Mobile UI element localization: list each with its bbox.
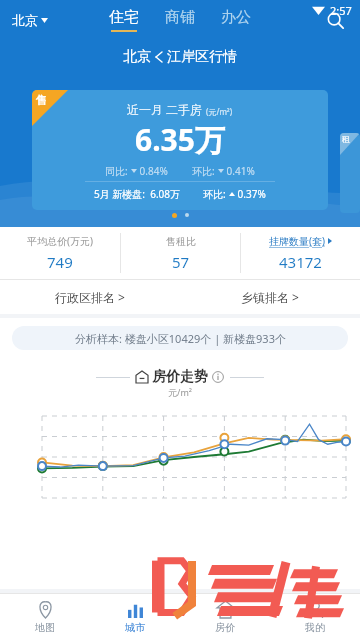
staticText: 0.37% bbox=[235, 187, 266, 201]
staticText: 平均总价(万元) bbox=[27, 234, 93, 248]
staticText: 元/m² bbox=[0, 386, 360, 398]
staticText: 6.35万 bbox=[135, 119, 225, 160]
staticText: 0.41% bbox=[224, 164, 255, 178]
button[interactable]: 地图 bbox=[0, 594, 90, 640]
staticText: 房价 bbox=[215, 621, 235, 634]
button[interactable]: 北京 bbox=[10, 10, 50, 30]
button[interactable]: 分析样本: 楼盘小区10429个 | 新楼盘933个 bbox=[12, 326, 348, 350]
button[interactable]: 乡镇排名 > bbox=[180, 280, 360, 314]
staticText: 分析样本: 楼盘小区10429个 | 新楼盘933个 bbox=[75, 331, 286, 346]
button[interactable]: 售 bbox=[32, 90, 328, 210]
button[interactable]: 行政区排名 > bbox=[0, 280, 180, 314]
staticText: 北京 bbox=[123, 48, 151, 66]
staticText: 售租比 bbox=[166, 235, 196, 248]
staticText: 城市 bbox=[125, 621, 145, 634]
staticText: 商铺 bbox=[165, 8, 195, 27]
button[interactable]: 城市 bbox=[90, 594, 180, 640]
staticText: 近一月 二手房 bbox=[127, 101, 206, 117]
staticText: 0.84% bbox=[137, 164, 168, 178]
staticText: 售 bbox=[36, 93, 47, 107]
button[interactable]: 住宅 bbox=[107, 8, 141, 32]
staticText: 办公 bbox=[221, 8, 251, 27]
staticText: 北京 bbox=[12, 12, 38, 28]
staticText: 地图 bbox=[35, 621, 55, 634]
staticText: 5月 新楼盘: 6.08万 bbox=[94, 187, 181, 201]
button[interactable]: 我的 bbox=[270, 594, 360, 640]
button[interactable]: 办公 bbox=[219, 8, 253, 32]
button[interactable]: Info bbox=[212, 371, 224, 383]
staticText: 环比: bbox=[192, 164, 218, 178]
button[interactable]: 租 bbox=[340, 133, 360, 213]
staticText: 2:57 bbox=[330, 3, 352, 18]
staticText: (元/m²) bbox=[206, 106, 233, 117]
staticText: 乡镇排名 > bbox=[241, 289, 299, 305]
staticText: 挂牌数量(套) bbox=[269, 234, 325, 248]
staticText: 房价走势 bbox=[152, 368, 208, 386]
staticText: 我的 bbox=[305, 621, 325, 634]
staticText: 住宅 bbox=[109, 8, 139, 27]
staticText: 环比: bbox=[203, 187, 229, 201]
button[interactable]: 房价 bbox=[180, 594, 270, 640]
staticText: 749 bbox=[47, 252, 73, 272]
staticText: 租 bbox=[342, 134, 350, 144]
button[interactable]: 售租比 bbox=[121, 227, 240, 279]
button[interactable]: 商铺 bbox=[163, 8, 197, 32]
staticText: 57 bbox=[172, 252, 190, 272]
staticText: 行政区排名 > bbox=[55, 289, 125, 305]
staticText: 43172 bbox=[279, 252, 322, 272]
staticText: 江岸区行情 bbox=[167, 48, 237, 66]
button[interactable]: Search bbox=[320, 5, 350, 35]
staticText: 同比: bbox=[105, 164, 131, 178]
button[interactable]: 挂牌数量(套) bbox=[241, 227, 360, 279]
button[interactable]: 平均总价(万元) bbox=[0, 227, 120, 279]
